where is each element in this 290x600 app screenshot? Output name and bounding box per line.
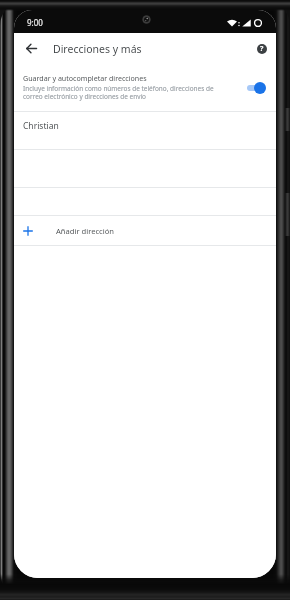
staticText: Guardar y autocompletar direcciones [23, 73, 147, 83]
staticText: Incluye información como números de telé… [23, 84, 231, 101]
staticText: ? [260, 44, 264, 54]
staticText: Direcciones y más [53, 42, 142, 56]
staticText: Añadir dirección [56, 226, 114, 236]
button[interactable]: Guardar y autocompletar direcciones [14, 64, 276, 111]
staticText: Christian [23, 120, 59, 132]
button[interactable]: Ayuda [252, 39, 272, 59]
staticText: 9:00 [27, 17, 43, 28]
button[interactable]: Atrás [20, 37, 43, 60]
button[interactable]: Christian [14, 112, 276, 149]
button[interactable]: Añadir dirección [14, 216, 276, 245]
